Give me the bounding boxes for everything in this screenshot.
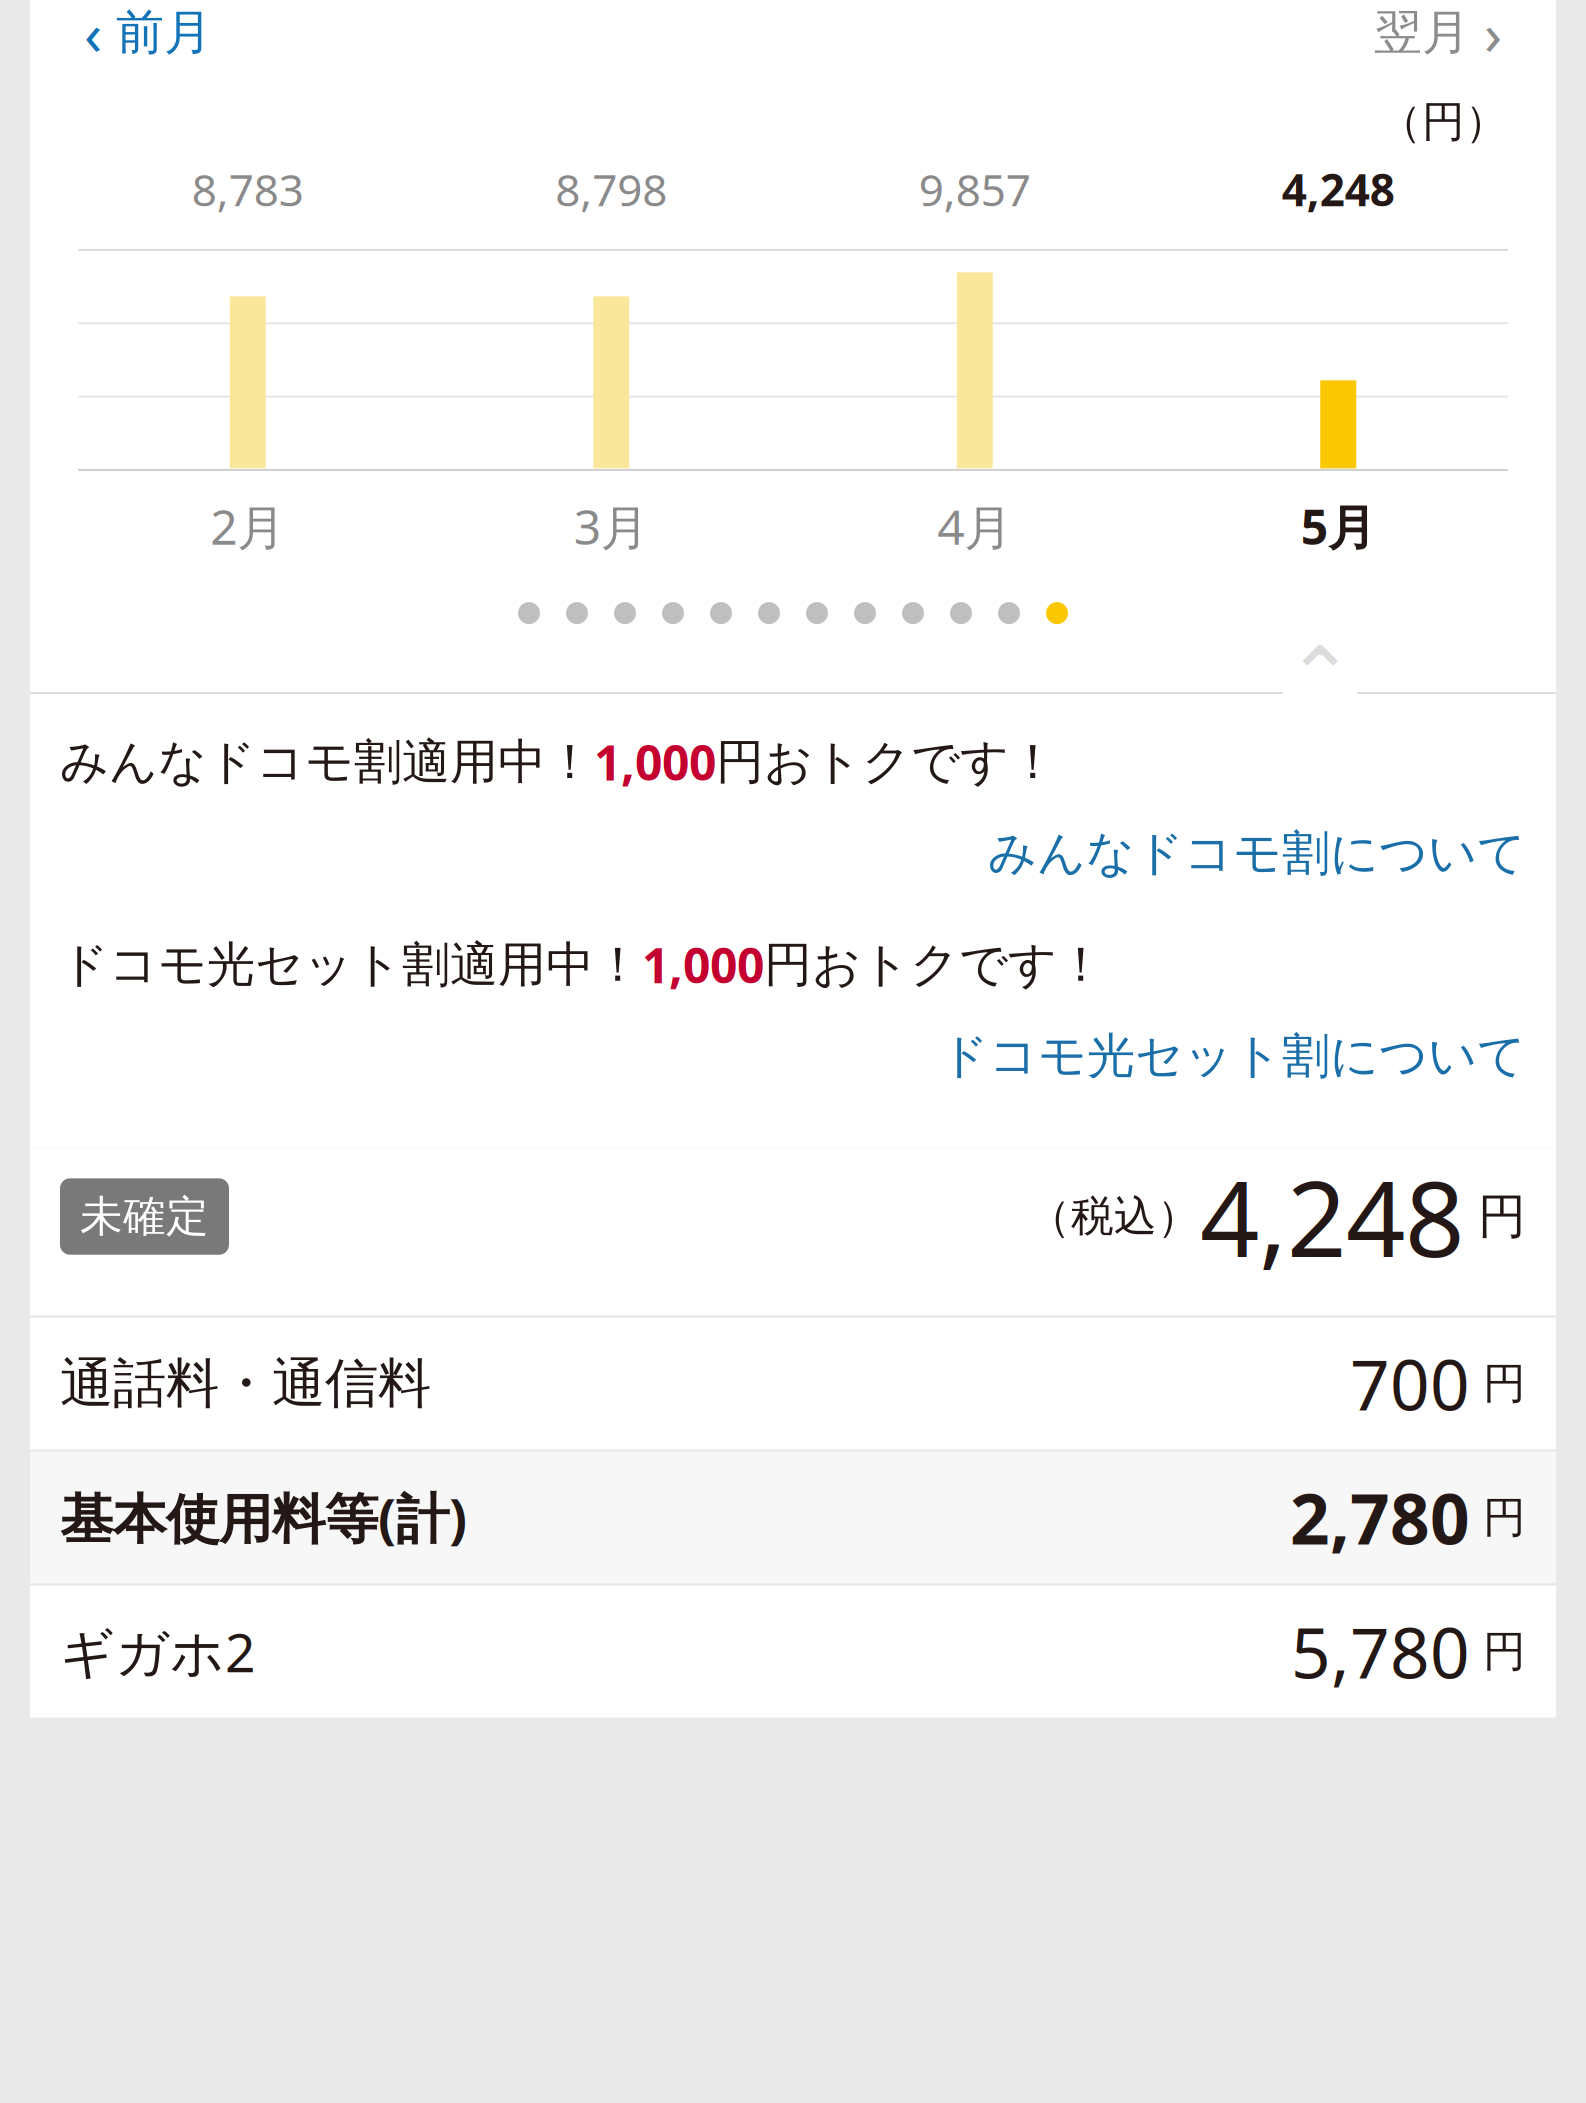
- staticText: 8,783: [192, 160, 304, 218]
- staticText: みんなドコモ割について: [988, 824, 1526, 883]
- button[interactable]: ドコモ光セット割について: [940, 1020, 1526, 1091]
- staticText: 4月: [937, 494, 1012, 558]
- staticText: 翌月: [1374, 3, 1470, 62]
- staticText: 2月: [210, 494, 285, 558]
- button[interactable]: ‹: [78, 0, 218, 79]
- staticText: ⌃: [1285, 630, 1354, 724]
- staticText: 4,248: [1200, 1147, 1464, 1286]
- staticText: 円: [1470, 1625, 1526, 1678]
- staticText: 4,248: [1282, 160, 1395, 218]
- staticText: 未確定: [80, 1190, 209, 1243]
- button[interactable]: ギガホ2: [30, 1586, 1556, 1718]
- staticText: 9,857: [919, 160, 1031, 218]
- staticText: 3月: [574, 494, 649, 558]
- button[interactable]: みんなドコモ割について: [988, 818, 1526, 889]
- staticText: ‹: [84, 0, 102, 71]
- staticText: みんなドコモ割適用中！: [60, 732, 594, 791]
- staticText: 5月: [1301, 494, 1376, 558]
- staticText: 基本使用料等(計): [60, 1482, 467, 1553]
- staticText: ドコモ光セット割について: [940, 1026, 1526, 1085]
- staticText: 700: [1350, 1338, 1470, 1430]
- staticText: 2,780: [1290, 1472, 1470, 1564]
- staticText: 円: [1470, 1491, 1526, 1544]
- staticText: 5,780: [1291, 1606, 1470, 1698]
- button[interactable]: 通話料・通信料: [30, 1318, 1556, 1450]
- staticText: 8,798: [555, 160, 667, 218]
- staticText: ›: [1484, 0, 1502, 71]
- staticText: （税込）: [1028, 1190, 1200, 1243]
- staticText: 通話料・通信料: [60, 1351, 431, 1416]
- staticText: 円: [1464, 1187, 1526, 1246]
- staticText: ギガホ2: [60, 1616, 256, 1687]
- staticText: 1,000: [594, 730, 716, 794]
- staticText: 前月: [116, 3, 212, 62]
- staticText: 円おトクです！: [716, 732, 1057, 791]
- staticText: 1,000: [642, 933, 764, 996]
- button[interactable]: 翌月: [1368, 0, 1508, 79]
- staticText: 円おトクです！: [764, 935, 1105, 994]
- staticText: ドコモ光セット割適用中！: [60, 935, 642, 994]
- button[interactable]: 基本使用料等(計): [30, 1452, 1556, 1584]
- staticText: （円）: [1379, 95, 1508, 148]
- staticText: 円: [1470, 1357, 1526, 1410]
